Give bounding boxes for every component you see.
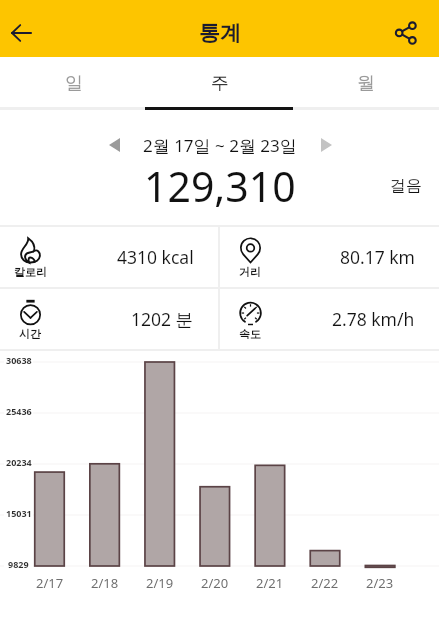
staticText: 2/21 [256,574,284,590]
staticText: 9829 [8,558,29,570]
staticText: 주 [211,72,229,95]
staticText: 걸음 [390,176,422,196]
staticText: 20234 [6,456,32,468]
staticText: 30638 [6,354,32,366]
button[interactable]: Back [0,10,44,56]
button[interactable]: 속도 [220,289,439,349]
button[interactable]: Share [382,9,428,55]
button[interactable]: 거리 [220,227,439,287]
staticText: 2/22 [311,574,339,590]
staticText: 시간 [19,327,41,341]
staticText: 2.78 km/h [332,307,415,331]
button[interactable]: 월 [293,57,439,109]
staticText: 2/19 [146,574,174,590]
staticText: 일 [65,72,83,95]
button[interactable]: 일 [0,57,147,109]
staticText: 거리 [239,265,261,279]
button[interactable]: 주 [147,57,293,109]
staticText: 칼로리 [14,265,47,279]
staticText: 25436 [6,405,32,417]
staticText: 통계 [199,20,241,46]
staticText: 월 [357,72,375,95]
staticText: 1202 분 [131,307,194,331]
staticText: 15031 [6,507,32,519]
staticText: 129,310 [144,158,296,214]
staticText: 속도 [239,327,261,341]
staticText: 2/18 [91,574,119,590]
button[interactable]: Previous week [97,128,131,162]
button[interactable]: 칼로리 [0,227,218,287]
staticText: 80.17 km [340,245,415,269]
button[interactable]: 시간 [0,289,218,349]
staticText: 2/17 [36,574,64,590]
staticText: 2/20 [201,574,229,590]
staticText: 2/23 [366,574,394,590]
staticText: 2월 17일 ~ 2월 23일 [143,134,297,157]
button[interactable]: Next week [309,128,343,162]
staticText: 4310 kcal [117,245,194,269]
